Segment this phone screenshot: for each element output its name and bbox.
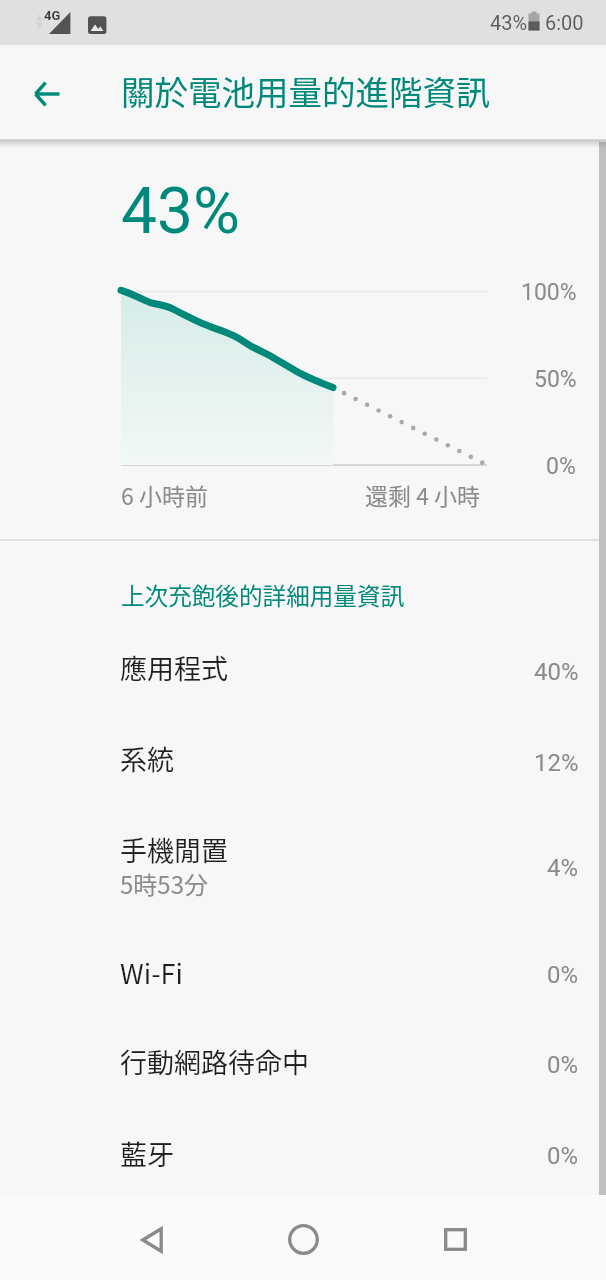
staticText: 43%	[490, 11, 528, 34]
staticText: 行動網路待命中	[120, 1042, 309, 1081]
button[interactable]: Recent apps	[411, 1197, 499, 1280]
button[interactable]: 藍牙	[0, 1108, 606, 1200]
staticText: 12%	[534, 749, 579, 777]
staticText: 6:00	[545, 11, 584, 34]
button[interactable]: Home	[259, 1197, 347, 1280]
button[interactable]: 行動網路待命中	[0, 1016, 606, 1108]
button[interactable]: Back	[108, 1197, 196, 1280]
staticText: 0%	[547, 1142, 579, 1170]
staticText: 5時53分	[120, 866, 208, 901]
staticText: 40%	[534, 658, 579, 686]
staticText: 還剩 4 小時	[365, 478, 481, 511]
button[interactable]: Wi-Fi	[0, 928, 606, 1016]
staticText: 0%	[546, 453, 576, 480]
staticText: 手機閒置	[120, 830, 228, 869]
staticText: 6 小時前	[121, 478, 208, 511]
staticText: 4G	[44, 8, 61, 23]
staticText: 100%	[521, 279, 577, 306]
staticText: 0%	[547, 1051, 579, 1079]
button[interactable]: 系統	[0, 714, 606, 806]
staticText: Wi-Fi	[120, 953, 183, 992]
staticText: 藍牙	[120, 1134, 174, 1173]
staticText: 50%	[534, 366, 577, 393]
staticText: 關於電池用量的進階資訊	[121, 66, 490, 115]
button[interactable]: 應用程式	[0, 622, 606, 714]
staticText: 43%	[121, 174, 240, 249]
button[interactable]: Back	[24, 70, 72, 118]
staticText: 應用程式	[120, 648, 228, 687]
staticText: 上次充飽後的詳細用量資訊	[121, 578, 405, 612]
button[interactable]: 手機閒置	[0, 806, 606, 928]
staticText: 系統	[120, 739, 174, 778]
staticText: 0%	[547, 961, 579, 989]
staticText: 4%	[547, 854, 579, 882]
